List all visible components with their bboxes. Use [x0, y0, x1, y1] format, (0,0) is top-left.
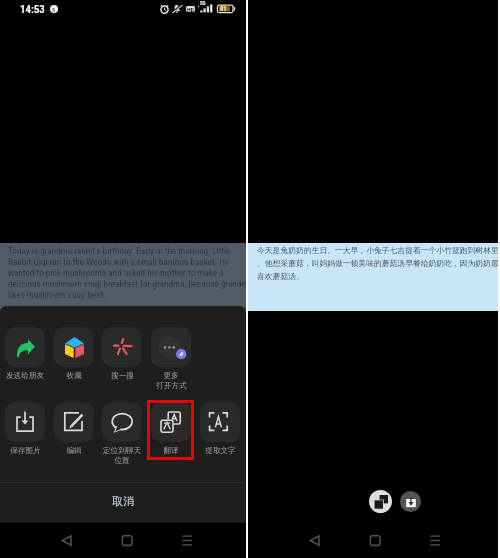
staticText: 今天是兔奶奶的生日。一大早，小兔子七吉提着一个小竹篮跑到树林里 。他想采蘑菇，叫… — [257, 245, 500, 281]
button[interactable]: 翻译 — [151, 402, 191, 456]
button[interactable]: Recents — [420, 523, 450, 558]
staticText: 更多 — [163, 371, 179, 381]
staticText: 14:53 — [20, 3, 45, 16]
button[interactable]: 取消 — [0, 483, 246, 523]
button[interactable]: 保存图片 — [5, 402, 45, 456]
staticText: 位置 — [114, 456, 130, 466]
button[interactable]: 收藏 — [54, 327, 94, 381]
button[interactable]: Recents — [172, 523, 202, 558]
staticText: 编辑 — [66, 446, 82, 456]
button[interactable]: 定位到聊天 — [102, 402, 142, 466]
staticText: Today is grandma rabbit's birthday. Earl… — [8, 245, 254, 300]
staticText: 收藏 — [66, 371, 82, 381]
staticText: 打开方式 — [156, 381, 187, 391]
button[interactable]: 发送给朋友 — [5, 327, 45, 381]
staticText: 保存图片 — [10, 446, 41, 456]
button[interactable]: Back — [52, 523, 82, 558]
staticText: 提取文字 — [205, 446, 236, 456]
staticText: 5 — [52, 6, 56, 13]
staticText: HD — [187, 6, 195, 12]
staticText: 5G — [200, 0, 206, 6]
button[interactable]: Save — [400, 491, 421, 512]
button[interactable]: 编辑 — [54, 402, 94, 456]
button[interactable]: Home — [112, 523, 142, 558]
staticText: 定位到聊天 — [103, 446, 141, 456]
staticText: 81 — [220, 5, 227, 13]
button[interactable]: 提取文字 — [200, 402, 240, 456]
button[interactable]: Back — [300, 523, 330, 558]
button[interactable]: Translate — [369, 490, 392, 513]
button[interactable]: Home — [360, 523, 390, 558]
staticText: 搜一搜 — [111, 371, 134, 381]
staticText: 翻译 — [163, 446, 179, 456]
button[interactable]: 搜一搜 — [102, 327, 142, 381]
button[interactable]: 更多 — [151, 327, 191, 391]
staticText: 发送给朋友 — [6, 371, 44, 381]
staticText: 取消 — [112, 494, 134, 508]
